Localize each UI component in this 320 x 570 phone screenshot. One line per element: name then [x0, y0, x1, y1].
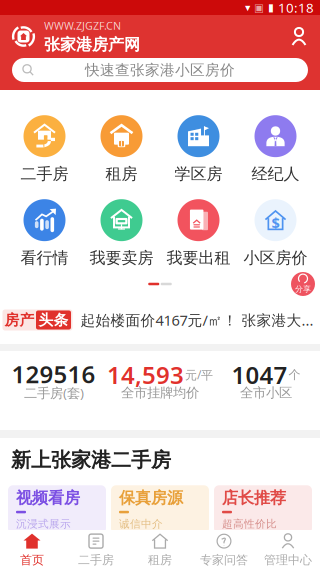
staticText: 张家港房产网: [44, 35, 140, 54]
button[interactable]: 首页: [0, 531, 64, 569]
button[interactable]: 租房: [83, 113, 160, 185]
staticText: 租房: [148, 553, 172, 567]
button[interactable]: 房产: [0, 296, 320, 344]
staticText: 视频看房: [16, 488, 80, 508]
button[interactable]: 快速查张家港小区房价: [12, 58, 308, 82]
staticText: 1047: [231, 359, 287, 391]
button[interactable]: My account: [284, 21, 314, 51]
button[interactable]: 二手房: [6, 113, 83, 185]
button[interactable]: 管理中心: [256, 531, 320, 569]
button[interactable]: 视频看房: [8, 485, 106, 533]
staticText: 超高性价比: [222, 517, 277, 530]
staticText: ▣: [254, 1, 264, 13]
staticText: 我要出租: [166, 248, 230, 268]
staticText: 管理中心: [264, 553, 312, 567]
staticText: 保真房源: [119, 488, 183, 508]
staticText: 头条: [38, 311, 68, 329]
staticText: 沉浸式展示: [16, 517, 71, 530]
button[interactable]: Share: [289, 270, 317, 298]
staticText: 全市挂牌均价: [121, 385, 199, 401]
staticText: 起始楼面价4167元/㎡！ 张家港大...: [80, 310, 313, 330]
staticText: 二手房: [78, 553, 114, 567]
button[interactable]: 二手房: [64, 531, 128, 569]
button[interactable]: 租房: [128, 531, 192, 569]
staticText: 店长推荐: [222, 488, 286, 508]
button[interactable]: 我要出租: [160, 197, 237, 269]
staticText: 小区房价: [243, 248, 307, 268]
staticText: WWW.ZJGZF.CN: [44, 19, 121, 33]
button[interactable]: 学区房: [160, 113, 237, 185]
staticText: 租房: [105, 164, 137, 184]
staticText: 首页: [20, 553, 44, 567]
staticText: 129516: [11, 358, 95, 390]
staticText: 元/平: [185, 367, 213, 383]
staticText: 我要卖房: [89, 248, 153, 268]
staticText: 经纪人: [251, 164, 299, 184]
staticText: ▮: [268, 1, 274, 13]
staticText: 二手房(套): [24, 384, 84, 402]
staticText: 看行情: [20, 248, 68, 268]
staticText: 14,593: [107, 359, 184, 391]
staticText: 10:18: [278, 0, 314, 16]
button[interactable]: 店长推荐: [214, 485, 312, 533]
button[interactable]: 经纪人: [237, 113, 314, 185]
staticText: 二手房: [20, 164, 68, 184]
staticText: $: [271, 213, 279, 232]
button[interactable]: 专家问答: [192, 531, 256, 569]
staticText: 学区房: [174, 164, 222, 184]
staticText: 诚信中介: [119, 517, 163, 530]
button[interactable]: $: [237, 197, 314, 269]
button[interactable]: 看行情: [6, 197, 83, 269]
button[interactable]: 保真房源: [111, 485, 209, 533]
button[interactable]: 我要卖房: [83, 197, 160, 269]
staticText: 新上张家港二手房: [11, 448, 171, 472]
staticText: 全市小区: [240, 385, 292, 401]
staticText: 分享: [295, 284, 311, 294]
staticText: 专家问答: [200, 553, 248, 567]
staticText: 个: [288, 367, 300, 382]
staticText: 快速查张家港小区房价: [85, 61, 235, 79]
staticText: ▾: [245, 1, 250, 13]
staticText: 房产: [4, 311, 34, 329]
